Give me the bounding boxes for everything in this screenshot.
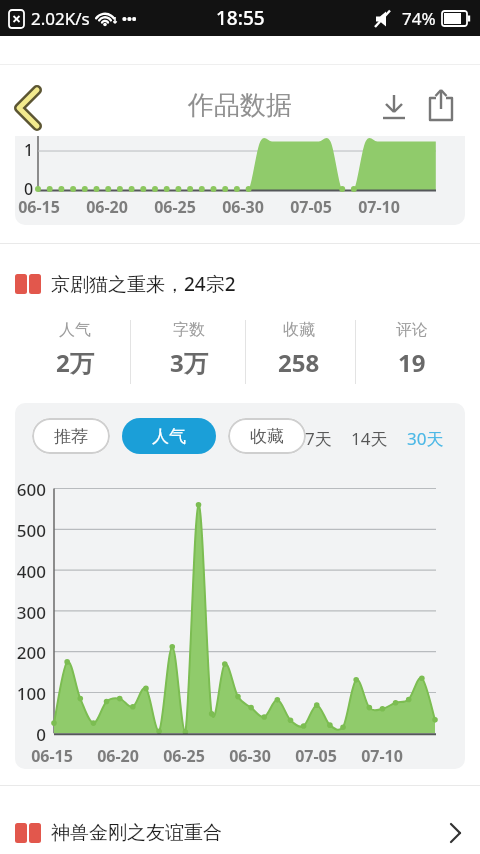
staticText: 作品数据	[188, 89, 292, 122]
staticText: 19	[398, 346, 426, 379]
staticText: 0	[24, 178, 34, 200]
staticText: 06-20	[97, 745, 139, 767]
staticText: 2万	[56, 346, 94, 379]
staticText: 3万	[170, 346, 208, 379]
button[interactable]: 字数	[134, 312, 244, 392]
staticText: 京剧猫之重来，24宗2	[51, 271, 236, 297]
staticText: 神兽金刚之友谊重合	[51, 821, 222, 845]
button[interactable]: 30天	[407, 427, 444, 450]
staticText: 258	[278, 346, 320, 379]
button[interactable]: 京剧猫之重来，24宗2	[0, 266, 480, 302]
staticText: 07-05	[295, 745, 337, 767]
staticText: 06-15	[31, 745, 73, 767]
staticText: •••	[122, 10, 137, 28]
staticText: 500	[16, 519, 46, 542]
staticText: 18:55	[216, 5, 265, 31]
button[interactable]	[420, 84, 462, 128]
button[interactable]: 人气	[20, 312, 130, 392]
staticText: 收藏	[283, 320, 315, 340]
button[interactable]	[374, 86, 414, 130]
staticText: 06-30	[222, 196, 264, 218]
staticText: 400	[16, 560, 46, 583]
button[interactable]: 14天	[351, 427, 388, 450]
staticText: 100	[16, 682, 46, 705]
staticText: 推荐	[54, 426, 88, 447]
staticText: 1	[24, 139, 34, 161]
button[interactable]: 收藏	[228, 418, 306, 454]
staticText: 人气	[59, 320, 91, 340]
staticText: 0	[36, 723, 46, 746]
staticText: 200	[16, 641, 46, 664]
staticText: 06-25	[154, 196, 196, 218]
staticText: 07-05	[290, 196, 332, 218]
staticText: 600	[16, 478, 46, 501]
staticText: 74%	[402, 7, 436, 30]
button[interactable]	[6, 84, 50, 132]
button[interactable]: 神兽金刚之友谊重合	[0, 812, 480, 854]
staticText: 字数	[173, 320, 205, 340]
button[interactable]: 收藏	[244, 312, 354, 392]
staticText: 2.02K/s	[31, 7, 90, 30]
button[interactable]: 人气	[122, 418, 216, 454]
staticText: 07-10	[361, 745, 403, 767]
staticText: 收藏	[250, 426, 284, 447]
staticText: 06-20	[86, 196, 128, 218]
staticText: 300	[16, 601, 46, 624]
staticText: 评论	[396, 320, 428, 340]
staticText: 06-30	[229, 745, 271, 767]
button[interactable]: 评论	[357, 312, 467, 392]
staticText: 07-10	[358, 196, 400, 218]
staticText: 06-25	[163, 745, 205, 767]
button[interactable]: 推荐	[32, 418, 110, 454]
staticText: 06-15	[18, 196, 60, 218]
staticText: 人气	[152, 426, 186, 447]
button[interactable]: 7天	[305, 427, 332, 450]
